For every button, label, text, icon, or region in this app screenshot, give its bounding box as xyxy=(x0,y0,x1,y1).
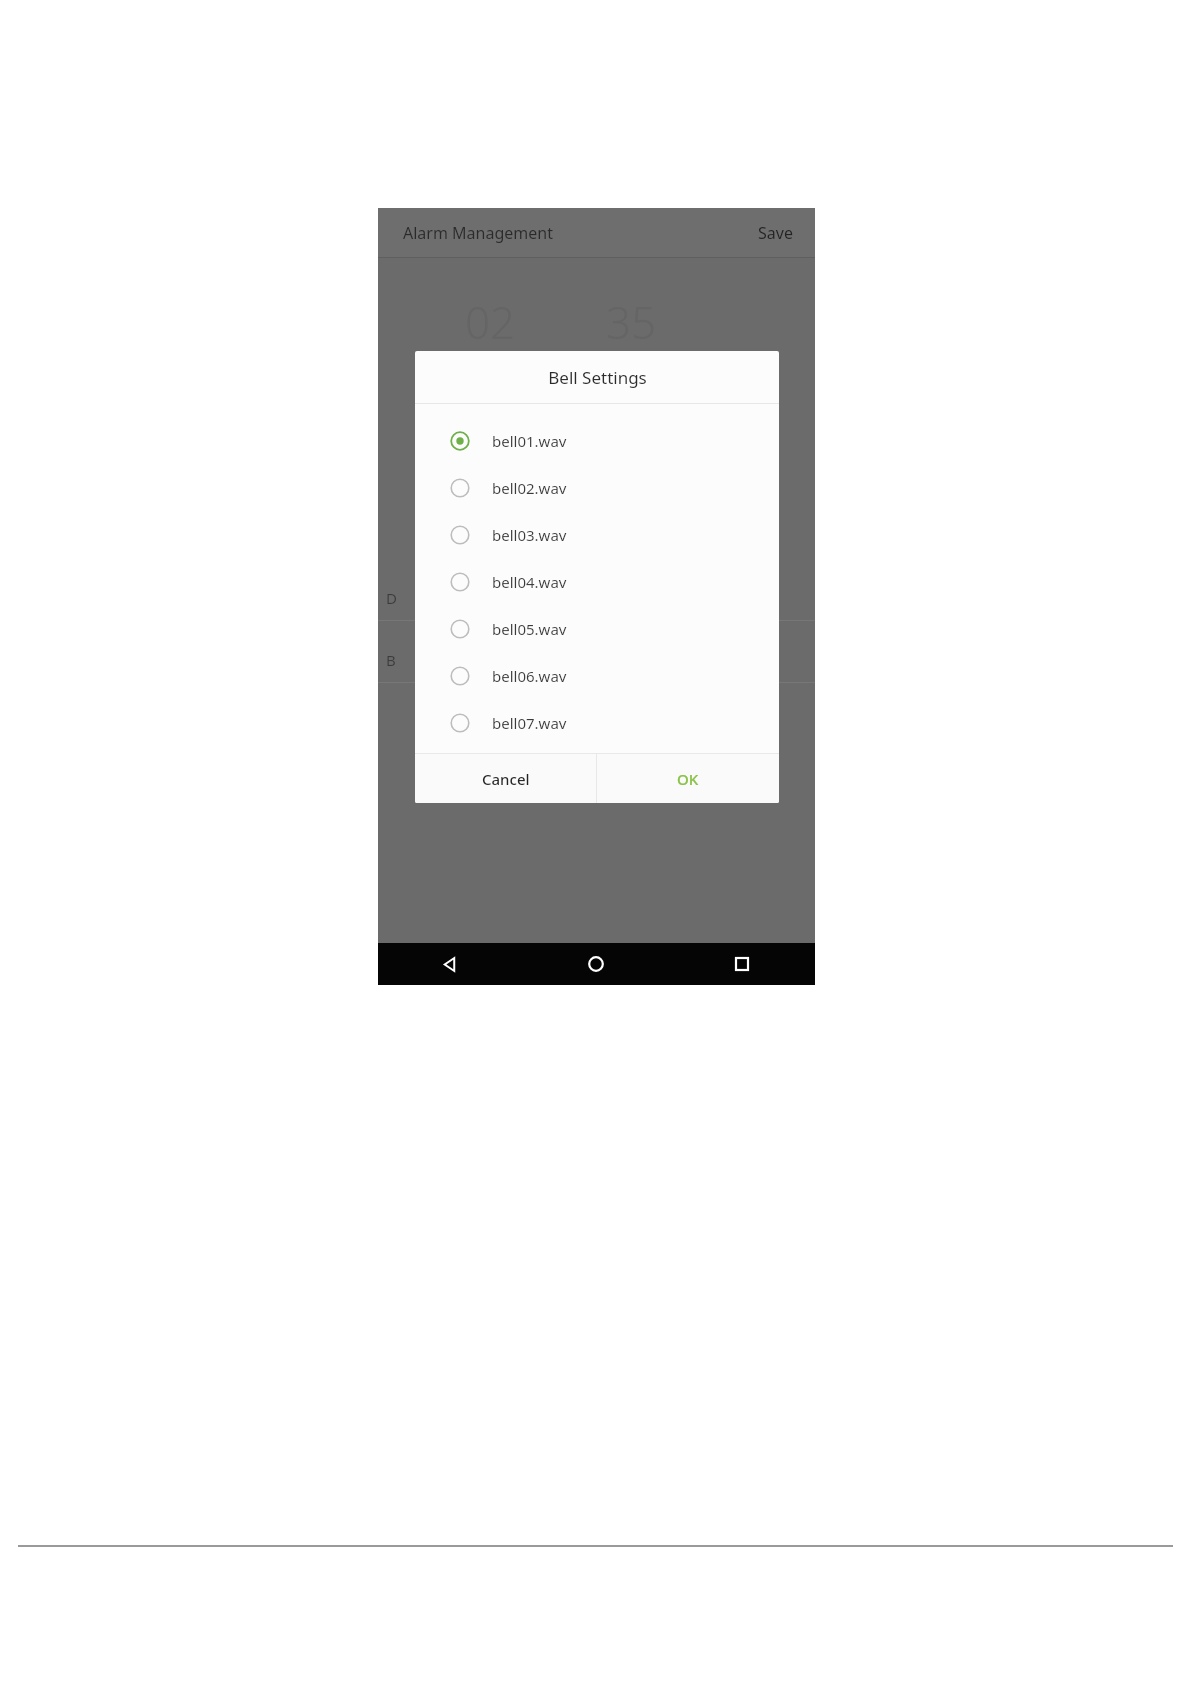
staticText: Alarm Management xyxy=(403,222,553,244)
button[interactable]: bell04.wav xyxy=(415,558,779,605)
staticText: bell04.wav xyxy=(492,572,567,592)
staticText: bell03.wav xyxy=(492,525,567,545)
staticText: bell02.wav xyxy=(492,478,567,498)
staticText: OK xyxy=(677,769,699,789)
staticText: 02 xyxy=(465,292,516,352)
staticText: bell07.wav xyxy=(492,713,567,733)
button[interactable]: bell02.wav xyxy=(415,464,779,511)
button[interactable]: bell06.wav xyxy=(415,652,779,699)
staticText: Cancel xyxy=(482,769,530,789)
staticText: bell05.wav xyxy=(492,619,567,639)
button[interactable]: Cancel xyxy=(415,754,596,803)
staticText: D xyxy=(386,588,397,608)
button[interactable]: Home xyxy=(523,943,669,985)
staticText: Bell Settings xyxy=(548,366,647,389)
button[interactable]: bell01.wav xyxy=(415,417,779,464)
button[interactable]: bell03.wav xyxy=(415,511,779,558)
staticText: 35 xyxy=(606,292,657,352)
staticText: bell01.wav xyxy=(492,431,567,451)
staticText: Save xyxy=(758,222,793,244)
button[interactable]: bell05.wav xyxy=(415,605,779,652)
staticText: bell06.wav xyxy=(492,666,567,686)
button[interactable]: Save xyxy=(736,210,815,256)
button[interactable]: Recent apps xyxy=(669,943,815,985)
button[interactable]: Back xyxy=(378,943,523,985)
button[interactable]: bell07.wav xyxy=(415,699,779,746)
staticText: B xyxy=(386,650,396,670)
button[interactable]: OK xyxy=(597,754,779,803)
